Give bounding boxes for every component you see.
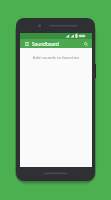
staticText: Add sounds to favorites <box>20 55 92 61</box>
button[interactable]: Open navigation drawer <box>23 40 30 47</box>
staticText: Soundboard <box>32 41 82 47</box>
button[interactable]: Search <box>82 40 89 47</box>
